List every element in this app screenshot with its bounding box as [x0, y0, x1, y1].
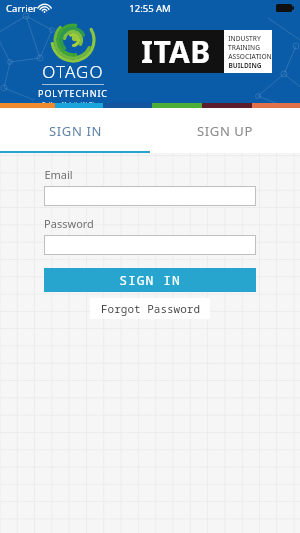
- staticText: POLYTECHNIC: [38, 87, 108, 99]
- staticText: Password: [44, 216, 94, 231]
- staticText: BUILDING: [228, 61, 262, 69]
- staticText: 12:55 AM: [129, 2, 171, 15]
- staticText: Carrier: [6, 2, 37, 15]
- button[interactable]: [44, 235, 256, 255]
- staticText: INDUSTRY: [228, 34, 261, 43]
- staticText: SIGN IN: [119, 271, 181, 289]
- button[interactable]: SIGN IN: [0, 108, 150, 153]
- button[interactable]: SIGN IN: [44, 268, 256, 292]
- staticText: Forgot Password: [101, 301, 200, 316]
- staticText: SIGN UP: [197, 122, 253, 140]
- button[interactable]: [44, 186, 256, 206]
- button[interactable]: SIGN UP: [150, 108, 300, 153]
- staticText: Email: [44, 167, 73, 182]
- staticText: SIGN IN: [49, 122, 102, 140]
- button[interactable]: Forgot Password: [90, 298, 210, 319]
- staticText: Te Kura Matatini ki Otago: [42, 100, 104, 107]
- staticText: TRAINING: [228, 43, 260, 52]
- staticText: OTAGO: [42, 60, 104, 83]
- staticText: ASSOCIATION: [228, 52, 272, 61]
- staticText: ITAB: [141, 31, 211, 72]
